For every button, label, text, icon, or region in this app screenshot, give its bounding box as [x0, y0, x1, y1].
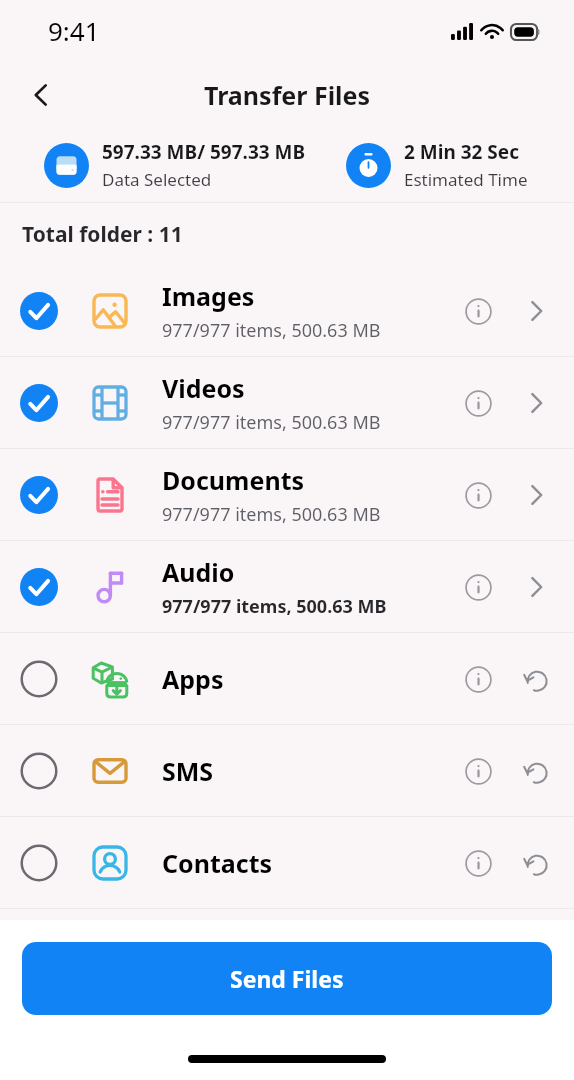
button[interactable]: Info — [454, 747, 502, 795]
other: Contacts — [88, 841, 132, 885]
staticText: Images — [162, 279, 255, 313]
button[interactable]: Info — [454, 287, 502, 335]
button[interactable]: Info — [454, 655, 502, 703]
staticText: 977/977 items, 500.63 MB — [162, 502, 381, 527]
other: Audio — [88, 565, 132, 609]
staticText: 9:41 — [48, 13, 100, 48]
button[interactable]: Open — [512, 563, 560, 611]
staticText: Audio — [162, 555, 235, 589]
button[interactable]: Selected — [18, 566, 60, 608]
staticText: Contacts — [162, 846, 273, 880]
button[interactable]: Selected — [0, 449, 574, 540]
button[interactable]: Open — [512, 287, 560, 335]
button[interactable]: Send Files — [22, 942, 552, 1015]
button[interactable]: Restore — [512, 655, 560, 703]
button[interactable]: Info — [454, 563, 502, 611]
staticText: Transfer Files — [204, 78, 371, 112]
staticText: 977/977 items, 500.63 MB — [162, 410, 381, 435]
staticText: 977/977 items, 500.63 MB — [162, 318, 381, 343]
button[interactable]: Open — [512, 379, 560, 427]
staticText: Documents — [162, 463, 305, 497]
other: Documents — [88, 473, 132, 517]
staticText: SMS — [162, 754, 214, 788]
button[interactable]: Selected — [18, 290, 60, 332]
button[interactable]: Selected — [18, 382, 60, 424]
button[interactable]: Not selected — [0, 725, 574, 816]
button[interactable]: Info — [454, 471, 502, 519]
button[interactable]: Info — [454, 839, 502, 887]
button[interactable]: Not selected — [18, 842, 60, 884]
other: SMS — [88, 749, 132, 793]
other: Apps — [88, 657, 132, 701]
staticText: Estimated Time — [404, 168, 528, 191]
button[interactable]: Selected — [0, 357, 574, 448]
button[interactable]: Restore — [512, 839, 560, 887]
button[interactable]: Not selected — [18, 750, 60, 792]
staticText: Data Selected — [102, 168, 212, 191]
button[interactable]: Selected — [0, 265, 574, 356]
button[interactable]: Back — [18, 72, 64, 118]
other: Images — [88, 289, 132, 333]
button[interactable]: Info — [454, 379, 502, 427]
button[interactable]: Not selected — [0, 633, 574, 724]
staticText: 597.33 MB/ 597.33 MB — [102, 139, 306, 165]
button[interactable]: Restore — [512, 747, 560, 795]
staticText: Apps — [162, 662, 224, 696]
staticText: Send Files — [230, 963, 344, 994]
staticText: 977/977 items, 500.63 MB — [162, 594, 387, 619]
button[interactable]: Not selected — [18, 658, 60, 700]
staticText: Total folder : 11 — [22, 220, 183, 249]
button[interactable]: Not selected — [0, 817, 574, 908]
button[interactable]: Open — [512, 471, 560, 519]
button[interactable]: Selected — [0, 541, 574, 632]
other: Videos — [88, 381, 132, 425]
button[interactable]: Selected — [18, 474, 60, 516]
staticText: Videos — [162, 371, 245, 405]
staticText: 2 Min 32 Sec — [404, 139, 519, 165]
